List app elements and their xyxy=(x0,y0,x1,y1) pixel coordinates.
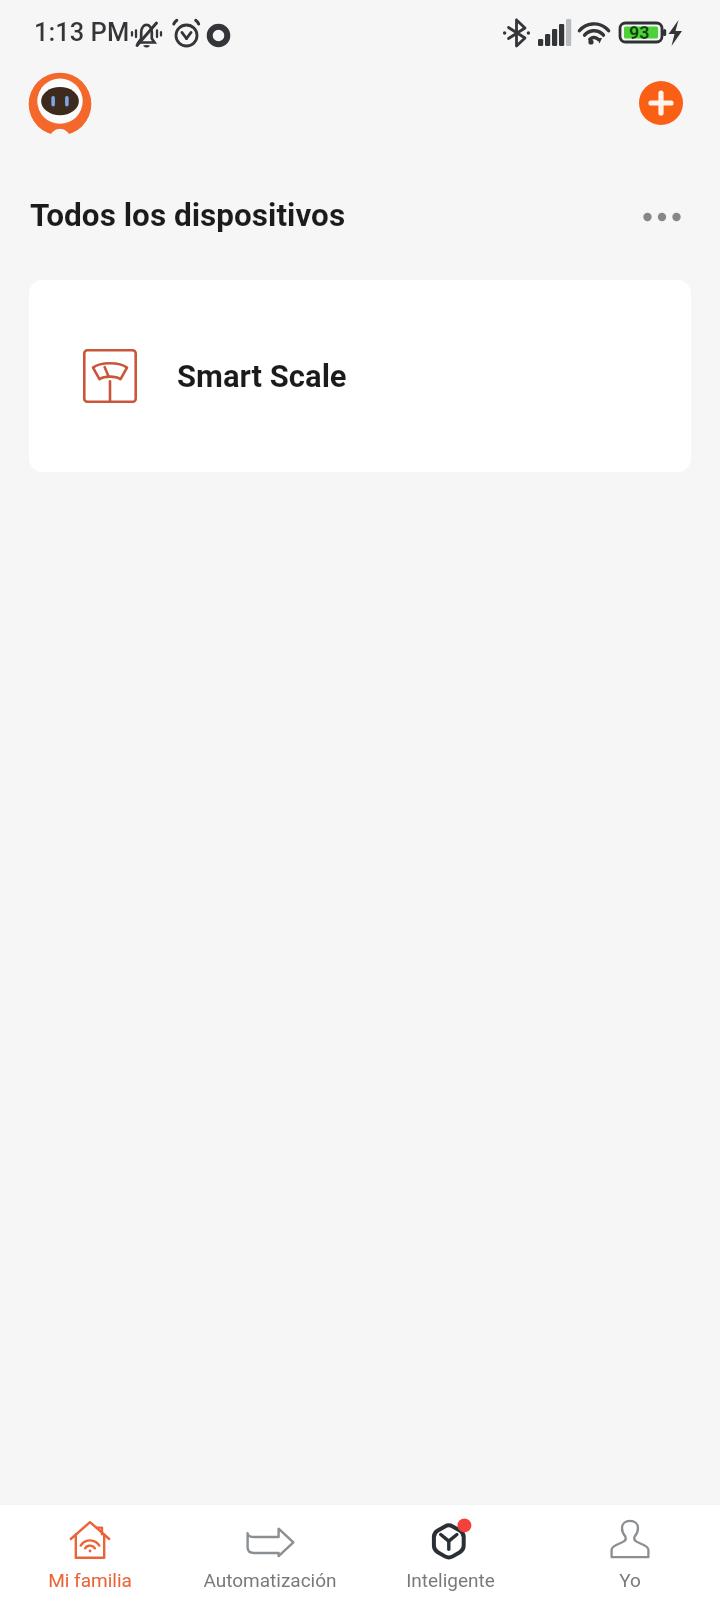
button[interactable]: Yo xyxy=(540,1505,720,1600)
button[interactable]: Smart Scale xyxy=(29,280,691,472)
button[interactable]: Add device xyxy=(639,81,683,125)
staticText: Yo xyxy=(619,1569,641,1591)
button[interactable]: Inteligente xyxy=(360,1505,540,1600)
staticText: Automatización xyxy=(203,1569,337,1591)
staticText: Todos los dispositivos xyxy=(30,197,346,234)
button[interactable]: More options xyxy=(634,193,690,237)
staticText: 93 xyxy=(629,22,650,43)
staticText: Mi familia xyxy=(48,1569,132,1591)
button[interactable]: Mi familia xyxy=(0,1505,180,1600)
staticText: 1:13 PM xyxy=(34,17,130,47)
staticText: Smart Scale xyxy=(177,358,347,394)
button[interactable]: Profile xyxy=(28,72,92,136)
button[interactable]: Automatización xyxy=(180,1505,360,1600)
staticText: Inteligente xyxy=(406,1569,495,1591)
